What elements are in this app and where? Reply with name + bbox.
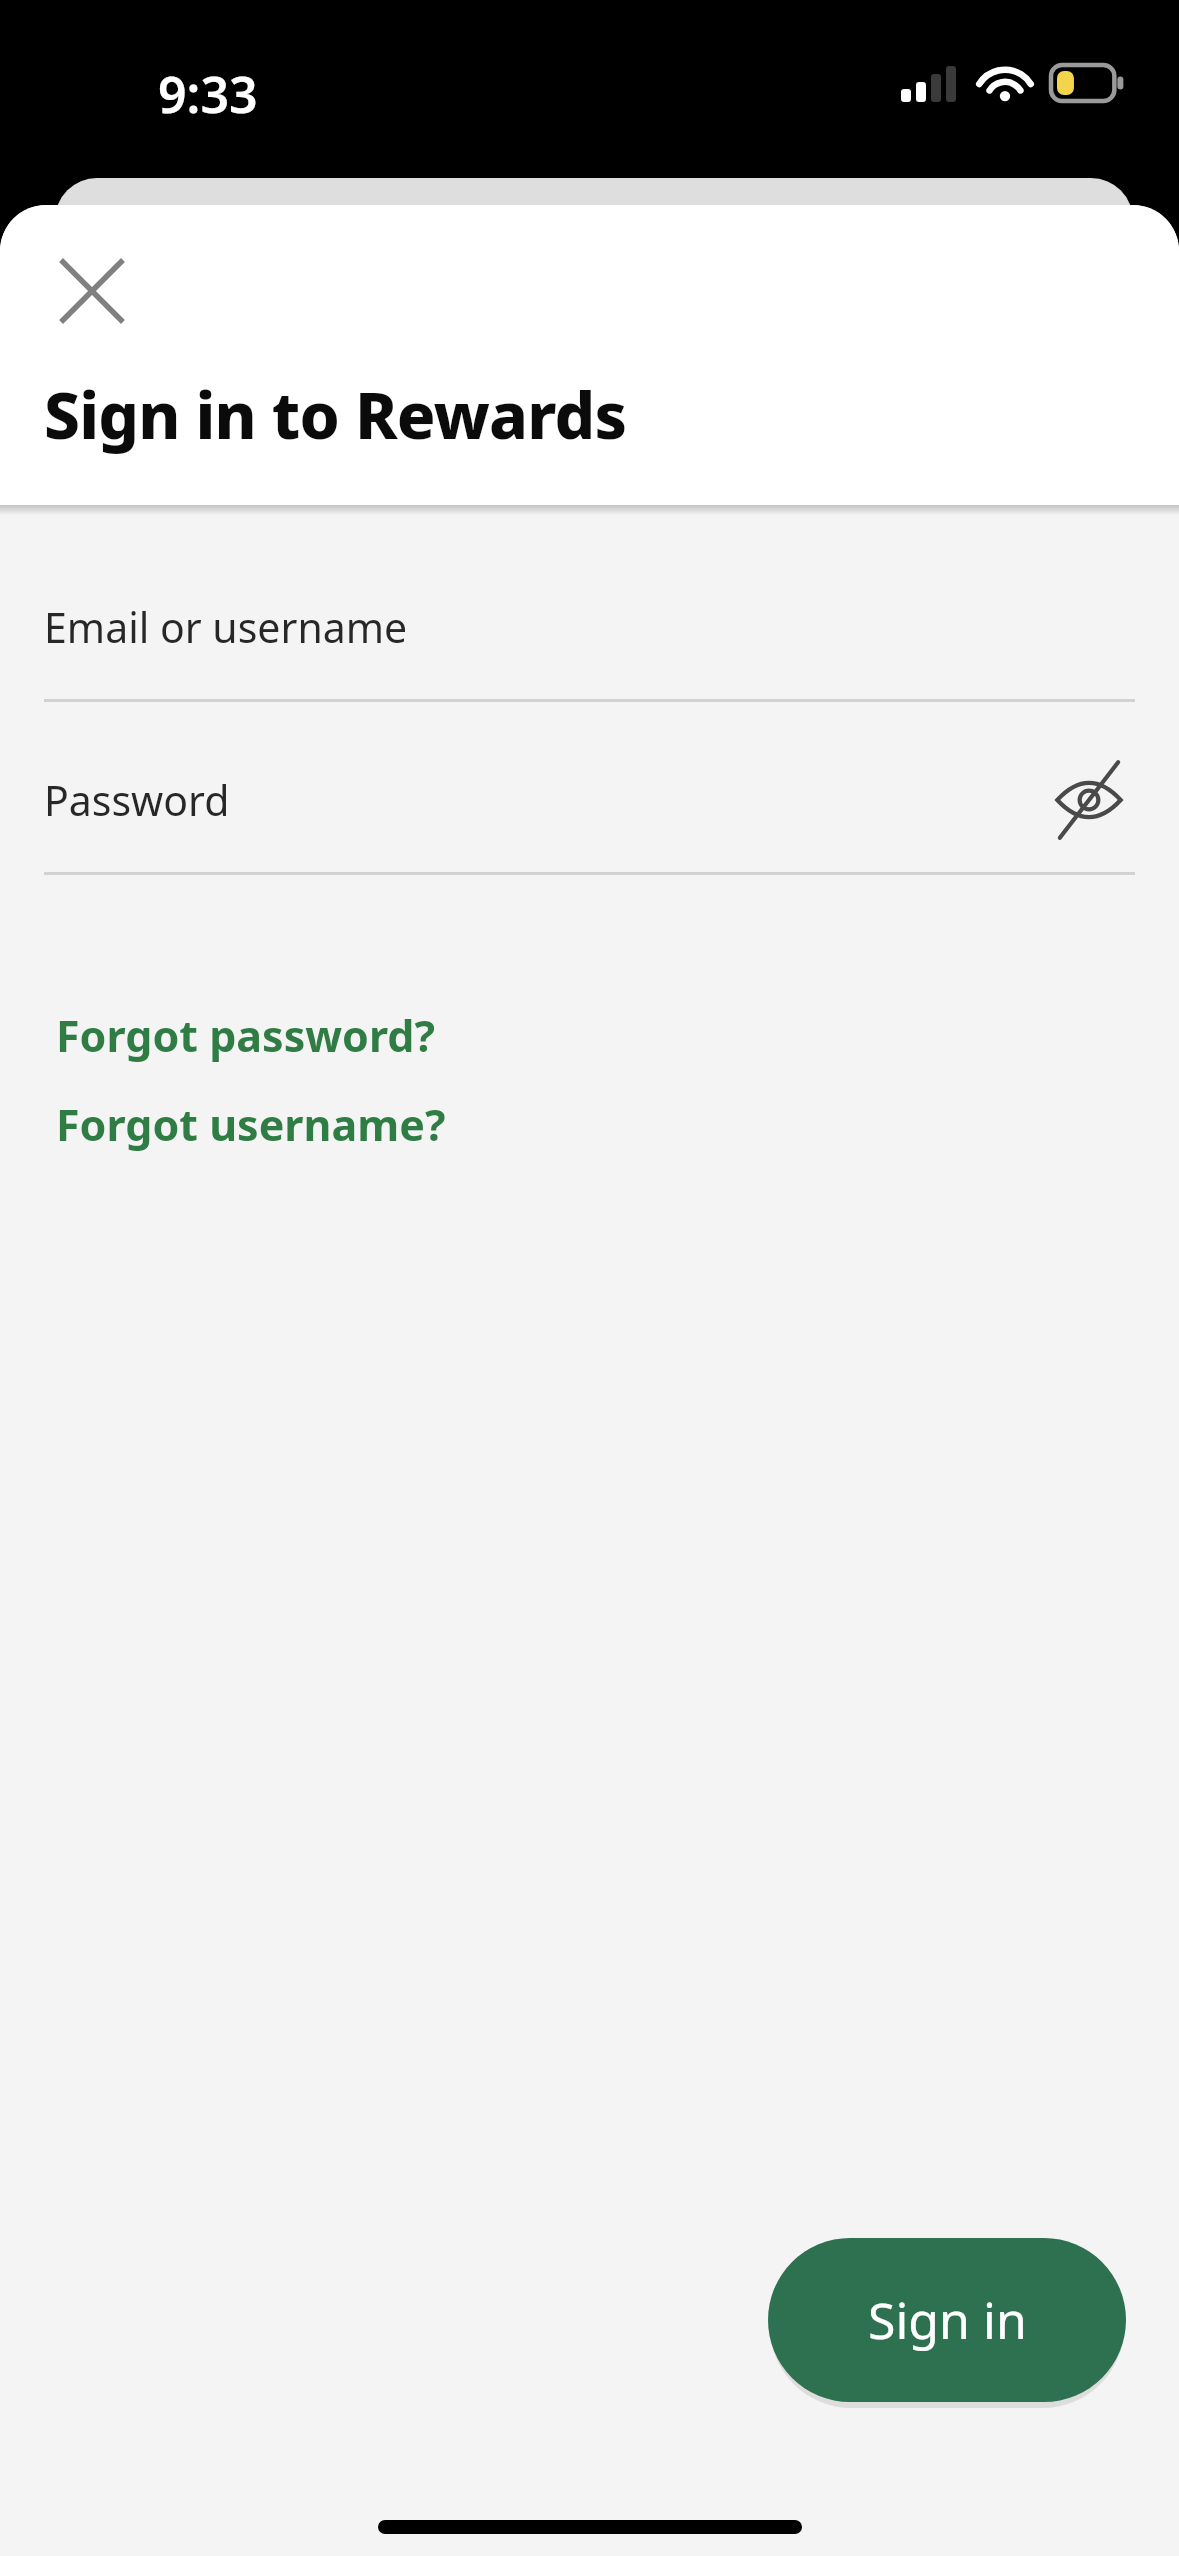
staticText: Forgot password? — [56, 1006, 436, 1065]
button[interactable]: Forgot password? — [56, 997, 436, 1073]
button[interactable]: Password — [44, 753, 1135, 875]
staticText: Forgot username? — [56, 1095, 446, 1154]
staticText: Sign in to Rewards — [44, 371, 627, 458]
button[interactable]: Email or username — [44, 580, 1135, 702]
button[interactable]: Show password — [1043, 754, 1135, 846]
staticText: 9:33 — [158, 60, 258, 128]
button[interactable]: Forgot username? — [56, 1086, 446, 1162]
staticText: Password — [44, 772, 230, 828]
staticText: Sign in — [868, 2286, 1027, 2354]
button[interactable]: Sign in — [768, 2238, 1126, 2402]
staticText: Email or username — [44, 599, 408, 655]
button[interactable]: Close — [40, 239, 144, 343]
